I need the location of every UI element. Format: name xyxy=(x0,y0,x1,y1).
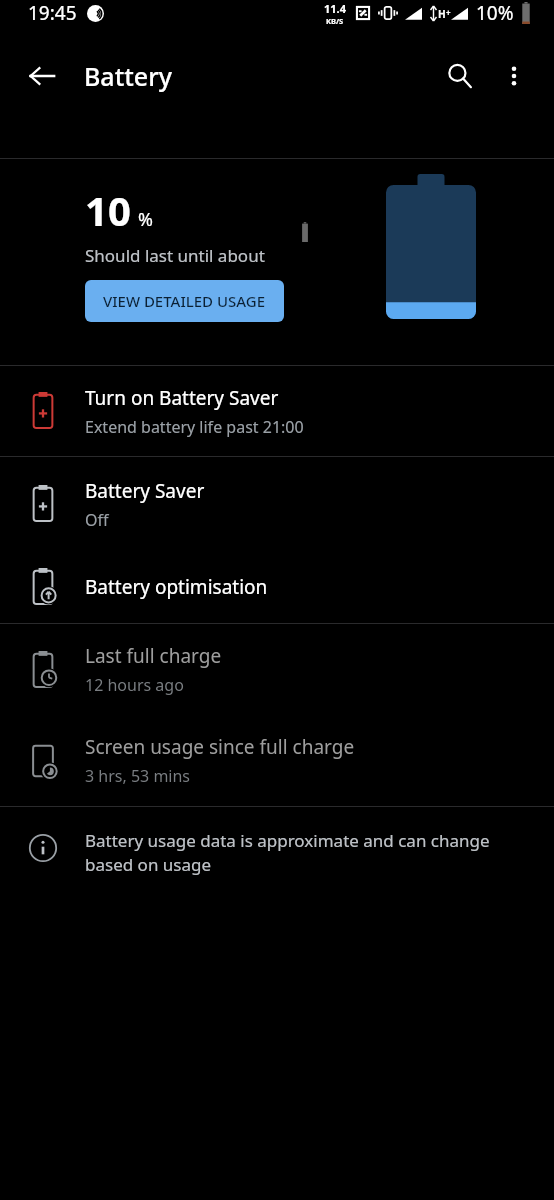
staticText: Screen usage since full charge xyxy=(85,734,355,760)
button[interactable]: Back xyxy=(14,48,70,104)
staticText: Battery Saver xyxy=(85,478,205,504)
staticText: Off xyxy=(85,509,109,531)
button[interactable]: Last full charge xyxy=(0,624,554,715)
button[interactable]: Screen usage since full charge xyxy=(0,715,554,806)
staticText: Extend battery life past 21:00 xyxy=(85,416,304,438)
button[interactable]: Battery optimisation xyxy=(0,551,554,623)
staticText: 10 xyxy=(85,183,131,237)
button[interactable]: Battery Saver xyxy=(0,457,554,551)
staticText: Battery optimisation xyxy=(85,574,268,600)
staticText: 3 hrs, 53 mins xyxy=(85,765,191,787)
button[interactable]: More options xyxy=(488,50,540,102)
staticText: VIEW DETAILED USAGE xyxy=(103,291,266,311)
staticText: Last full charge xyxy=(85,643,222,669)
staticText: % xyxy=(138,207,153,232)
staticText: 19:45 xyxy=(28,0,77,26)
staticText: Battery usage data is approximate and ca… xyxy=(85,829,518,876)
staticText: 10% xyxy=(476,0,514,26)
staticText: KB/S xyxy=(326,16,344,26)
button[interactable]: Turn on Battery Saver xyxy=(0,366,554,456)
staticText: Should last until about xyxy=(85,244,265,267)
staticText: Battery xyxy=(84,59,172,93)
staticText: Turn on Battery Saver xyxy=(85,385,279,411)
staticText: + xyxy=(446,7,451,18)
staticText: H xyxy=(438,7,446,21)
button[interactable]: Search xyxy=(432,48,488,104)
staticText: 11.4 xyxy=(324,1,346,16)
staticText: 12 hours ago xyxy=(85,674,184,696)
button[interactable]: VIEW DETAILED USAGE xyxy=(85,280,284,322)
